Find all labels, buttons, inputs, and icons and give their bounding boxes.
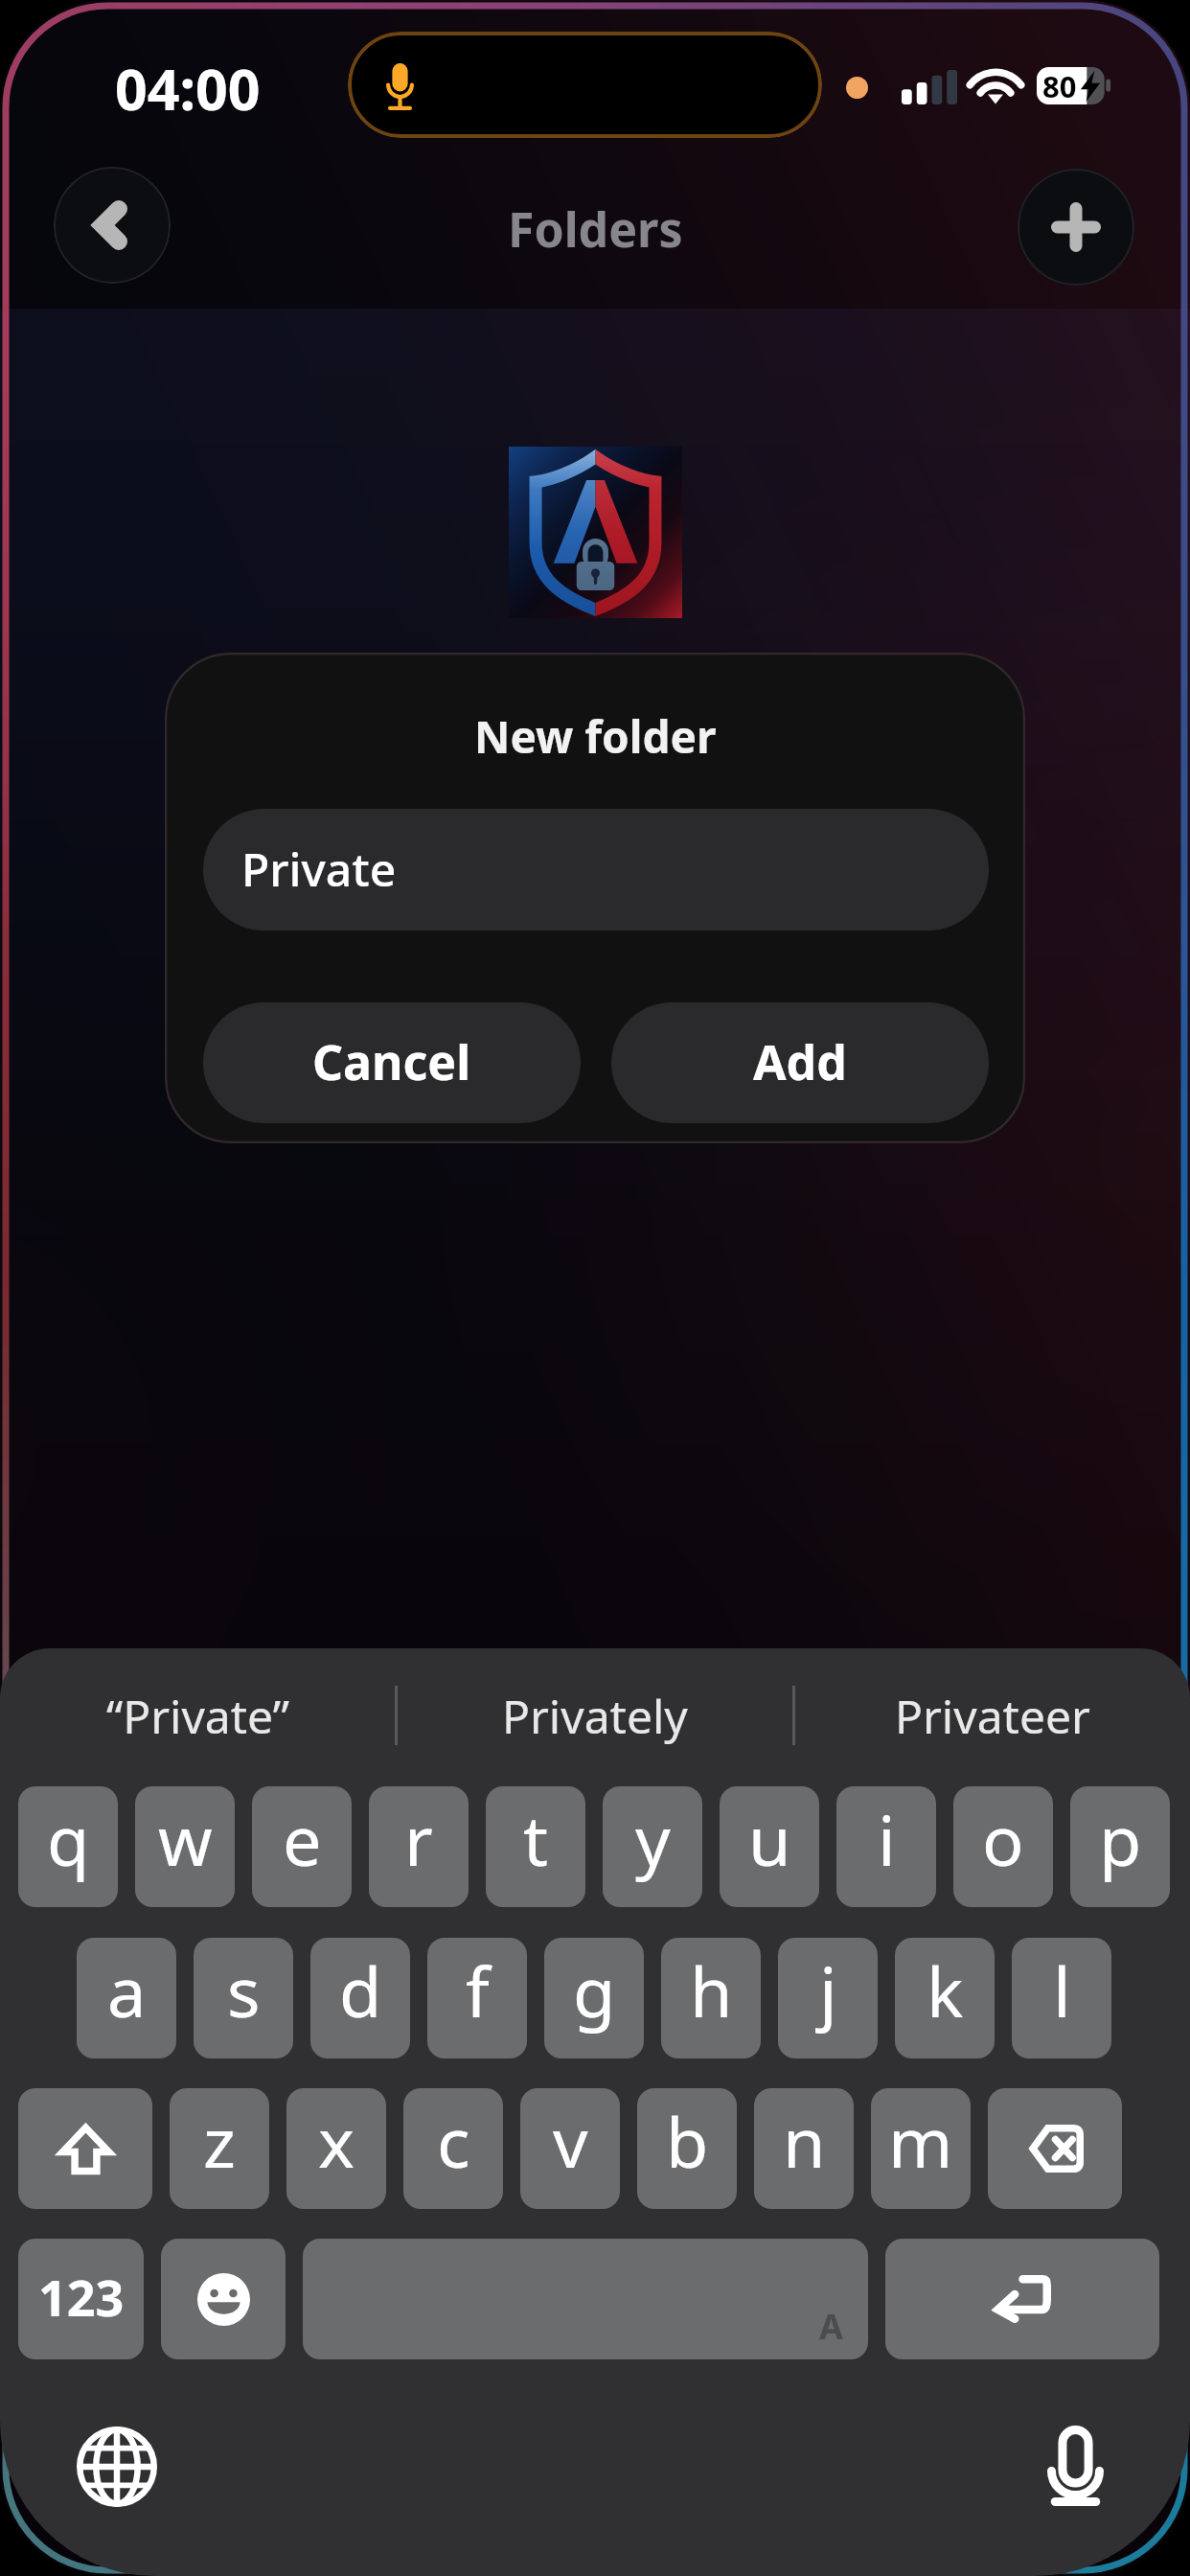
button[interactable]: Back (54, 167, 171, 284)
button[interactable]: Enter (885, 2239, 1159, 2359)
button[interactable]: l (1012, 1938, 1111, 2058)
staticText: s (227, 1943, 261, 2037)
staticText: “Private” (106, 1685, 289, 1747)
button[interactable]: “Private” (0, 1648, 395, 1782)
staticText: Folders (508, 196, 683, 262)
staticText: n (783, 2094, 826, 2188)
button[interactable]: Emoji (161, 2239, 286, 2359)
button[interactable]: k (895, 1938, 995, 2058)
button[interactable]: Private (203, 809, 989, 931)
button[interactable]: u (720, 1786, 819, 1907)
staticText: t (523, 1792, 548, 1886)
button[interactable]: m (871, 2088, 971, 2209)
button[interactable]: g (544, 1938, 644, 2058)
button[interactable]: e (252, 1786, 352, 1907)
button[interactable]: q (18, 1786, 118, 1907)
staticText: Private (241, 838, 397, 900)
staticText: c (437, 2094, 470, 2188)
staticText: k (927, 1943, 964, 2037)
button[interactable]: y (603, 1786, 702, 1907)
button[interactable]: v (520, 2088, 620, 2209)
button[interactable]: Privateer (795, 1648, 1190, 1782)
staticText: x (318, 2094, 355, 2188)
button[interactable]: b (637, 2088, 737, 2209)
staticText: y (635, 1792, 671, 1886)
staticText: z (203, 2094, 236, 2188)
button[interactable]: o (953, 1786, 1053, 1907)
button[interactable]: j (778, 1938, 878, 2058)
button[interactable]: Voice input (1035, 2426, 1115, 2506)
staticText: 123 (38, 2263, 125, 2331)
staticText: 04:00 (115, 50, 261, 126)
button[interactable]: p (1070, 1786, 1170, 1907)
button[interactable]: Shift (18, 2088, 152, 2209)
button[interactable]: x (286, 2088, 386, 2209)
staticText: a (107, 1943, 147, 2037)
staticText: w (158, 1792, 213, 1886)
staticText: 80 (1042, 66, 1077, 103)
staticText: h (690, 1943, 733, 2037)
button[interactable]: Space (303, 2239, 868, 2359)
button[interactable]: a (77, 1938, 176, 2058)
button[interactable]: Cancel (203, 1002, 581, 1123)
button[interactable]: w (135, 1786, 235, 1907)
staticText: i (878, 1792, 896, 1886)
staticText: A (819, 2303, 843, 2350)
staticText: b (666, 2094, 709, 2188)
button[interactable]: z (170, 2088, 269, 2209)
staticText: Privateer (895, 1685, 1090, 1747)
staticText: l (1053, 1943, 1071, 2037)
button[interactable]: n (754, 2088, 854, 2209)
staticText: v (553, 2094, 588, 2188)
button[interactable]: r (369, 1786, 469, 1907)
staticText: j (819, 1943, 837, 2037)
button[interactable]: f (427, 1938, 527, 2058)
staticText: g (573, 1943, 616, 2037)
staticText: r (404, 1792, 433, 1886)
button[interactable]: 123 (18, 2239, 144, 2359)
staticText: m (888, 2094, 953, 2188)
button[interactable]: d (310, 1938, 410, 2058)
staticText: Cancel (312, 1029, 471, 1094)
staticText: e (283, 1792, 322, 1886)
staticText: q (47, 1792, 90, 1886)
button[interactable]: c (403, 2088, 503, 2209)
button[interactable]: Backspace (988, 2088, 1122, 2209)
staticText: o (982, 1792, 1024, 1886)
button[interactable]: Add folder (1018, 169, 1134, 286)
staticText: d (339, 1943, 382, 2037)
staticText: Privately (502, 1685, 688, 1747)
button[interactable]: Change language (77, 2426, 157, 2507)
staticText: Add (753, 1029, 847, 1094)
button[interactable]: t (486, 1786, 585, 1907)
button[interactable]: s (194, 1938, 293, 2058)
staticText: f (466, 1943, 490, 2037)
button[interactable]: h (661, 1938, 761, 2058)
staticText: p (1099, 1792, 1142, 1886)
button[interactable]: Add (611, 1002, 989, 1123)
staticText: u (748, 1792, 791, 1886)
button[interactable]: i (836, 1786, 936, 1907)
staticText: New folder (474, 706, 717, 767)
button[interactable]: Privately (398, 1648, 792, 1782)
